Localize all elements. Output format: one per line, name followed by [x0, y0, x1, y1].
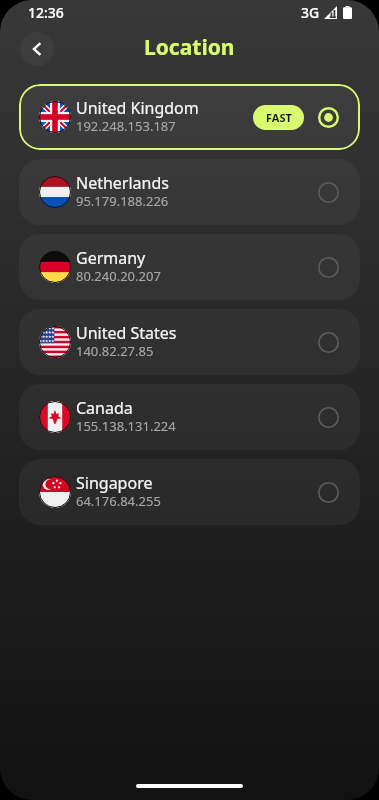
staticText: 155.138.131.224: [76, 417, 176, 435]
button[interactable]: Germany: [19, 234, 360, 300]
button[interactable]: Netherlands: [19, 159, 360, 225]
staticText: FAST: [266, 110, 292, 125]
staticText: United Kingdom: [76, 97, 199, 119]
staticText: United States: [76, 322, 177, 344]
staticText: Germany: [76, 247, 146, 269]
button[interactable]: FAST: [253, 105, 304, 130]
button[interactable]: United Kingdom: [19, 84, 360, 150]
staticText: 95.179.188.226: [76, 192, 169, 210]
staticText: Location: [144, 33, 235, 62]
button[interactable]: Back: [20, 32, 54, 66]
staticText: Singapore: [76, 472, 153, 494]
staticText: 80.240.20.207: [76, 267, 161, 285]
staticText: 12:36: [28, 3, 64, 22]
button[interactable]: Canada: [19, 384, 360, 450]
staticText: 192.248.153.187: [76, 117, 176, 135]
staticText: Canada: [76, 397, 133, 419]
button[interactable]: Singapore: [19, 459, 360, 525]
staticText: 64.176.84.255: [76, 492, 161, 510]
staticText: 3G: [301, 3, 320, 22]
button[interactable]: United States: [19, 309, 360, 375]
staticText: 140.82.27.85: [76, 342, 154, 360]
staticText: Netherlands: [76, 172, 169, 194]
